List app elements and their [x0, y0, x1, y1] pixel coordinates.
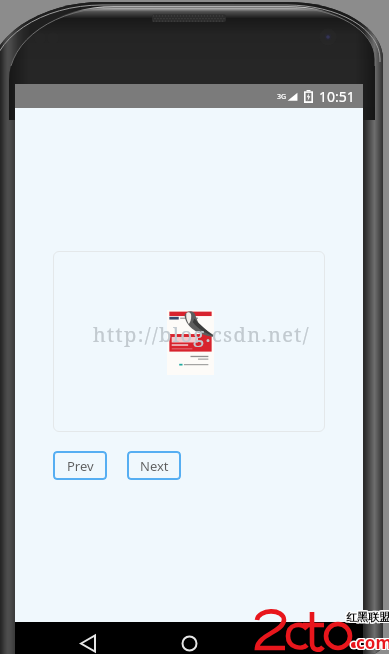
staticText: 红黑联盟	[345, 610, 389, 624]
staticText: com	[355, 631, 389, 654]
staticText: 红黑联盟	[346, 611, 389, 625]
staticText: com	[356, 631, 389, 654]
staticText: com	[356, 630, 389, 653]
staticText: Next	[140, 457, 169, 475]
staticText: 红黑联盟	[347, 609, 389, 623]
staticText: 红黑联盟	[345, 611, 389, 625]
button[interactable]: Next	[127, 451, 181, 480]
staticText: Prev	[67, 457, 94, 475]
button[interactable]: Back	[73, 629, 97, 654]
staticText: com	[356, 632, 389, 654]
staticText: 红黑联盟	[347, 610, 389, 624]
staticText: com	[355, 630, 389, 653]
button[interactable]: Home	[175, 629, 199, 654]
staticText: com	[355, 632, 389, 654]
staticText: 红黑联盟	[346, 610, 389, 624]
staticText: com	[357, 631, 389, 654]
staticText: 10:51	[319, 87, 355, 106]
staticText: 红黑联盟	[346, 609, 389, 623]
button[interactable]: Prev	[53, 451, 107, 480]
staticText: com	[357, 632, 389, 654]
staticText: 红黑联盟	[347, 611, 389, 625]
staticText: 红黑联盟	[345, 609, 389, 623]
staticText: 3G	[277, 92, 287, 102]
staticText: http://blog.csdn.net/	[93, 321, 310, 348]
staticText: com	[357, 630, 389, 653]
